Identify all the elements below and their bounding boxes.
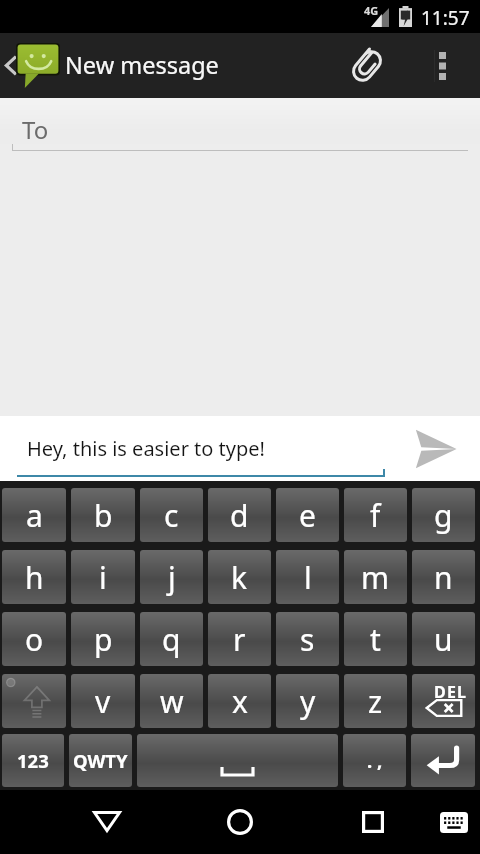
staticText: t — [370, 619, 381, 660]
staticText: . , — [367, 748, 383, 773]
staticText: m — [361, 557, 390, 598]
staticText: b — [94, 495, 113, 536]
staticText: u — [434, 619, 453, 660]
staticText: z — [368, 681, 383, 722]
staticText: k — [231, 557, 248, 598]
button[interactable]: g — [412, 488, 475, 542]
button[interactable]: DEL — [412, 674, 475, 728]
staticText: s — [300, 619, 315, 660]
staticText: n — [434, 557, 453, 598]
button[interactable]: 123 — [2, 734, 64, 787]
staticText: c — [164, 495, 179, 536]
button[interactable]: l — [276, 550, 339, 604]
button[interactable]: j — [140, 550, 203, 604]
button[interactable]: Send — [385, 416, 480, 481]
staticText: d — [230, 495, 249, 536]
button[interactable]: o — [2, 612, 66, 666]
button[interactable]: u — [412, 612, 475, 666]
staticText: Hey, this is easier to type! — [27, 435, 265, 462]
staticText: 4G — [364, 3, 379, 18]
button[interactable] — [137, 734, 338, 787]
staticText: 11:57 — [421, 5, 470, 31]
staticText: i — [99, 557, 107, 598]
button[interactable]: Navigate up — [0, 33, 62, 98]
button[interactable]: m — [344, 550, 407, 604]
staticText: New message — [65, 49, 219, 81]
button[interactable]: r — [208, 612, 271, 666]
staticText: 123 — [17, 748, 49, 773]
button[interactable]: z — [344, 674, 407, 728]
button[interactable]: b — [71, 488, 135, 542]
staticText: l — [304, 557, 312, 598]
button[interactable]: More options — [417, 33, 480, 98]
staticText: v — [95, 681, 111, 722]
button[interactable]: QWTY — [69, 734, 132, 787]
staticText: e — [299, 495, 316, 536]
button[interactable]: s — [276, 612, 339, 666]
staticText: g — [434, 495, 453, 536]
button[interactable]: c — [140, 488, 203, 542]
button[interactable]: h — [2, 550, 66, 604]
button[interactable]: Back — [72, 789, 142, 853]
staticText: To — [22, 113, 49, 146]
staticText: o — [25, 619, 44, 660]
button[interactable]: n — [412, 550, 475, 604]
button[interactable] — [411, 734, 475, 787]
staticText: x — [232, 681, 248, 722]
button[interactable]: Home — [205, 790, 275, 854]
button[interactable]: . , — [343, 734, 406, 787]
button[interactable]: e — [276, 488, 339, 542]
staticText: h — [25, 557, 44, 598]
button[interactable]: v — [71, 674, 135, 728]
button[interactable]: y — [276, 674, 339, 728]
button[interactable]: x — [208, 674, 271, 728]
staticText: DEL — [434, 681, 468, 703]
button[interactable]: k — [208, 550, 271, 604]
staticText: a — [26, 495, 43, 536]
staticText: q — [162, 619, 181, 660]
button[interactable] — [2, 674, 66, 728]
staticText: r — [233, 619, 246, 660]
staticText: f — [370, 495, 381, 536]
staticText: QWTY — [73, 748, 128, 773]
button[interactable]: w — [140, 674, 203, 728]
button[interactable]: i — [71, 550, 135, 604]
staticText: j — [168, 557, 176, 598]
staticText: p — [94, 619, 113, 660]
button[interactable]: q — [140, 612, 203, 666]
staticText: w — [160, 681, 184, 722]
button[interactable]: p — [71, 612, 135, 666]
button[interactable]: Attach — [326, 33, 408, 98]
staticText: y — [300, 681, 316, 722]
button[interactable]: Recent apps — [338, 790, 408, 854]
button[interactable]: f — [344, 488, 407, 542]
button[interactable]: a — [2, 488, 66, 542]
button[interactable]: d — [208, 488, 271, 542]
button[interactable]: t — [344, 612, 407, 666]
button[interactable]: Switch keyboard — [424, 790, 480, 854]
